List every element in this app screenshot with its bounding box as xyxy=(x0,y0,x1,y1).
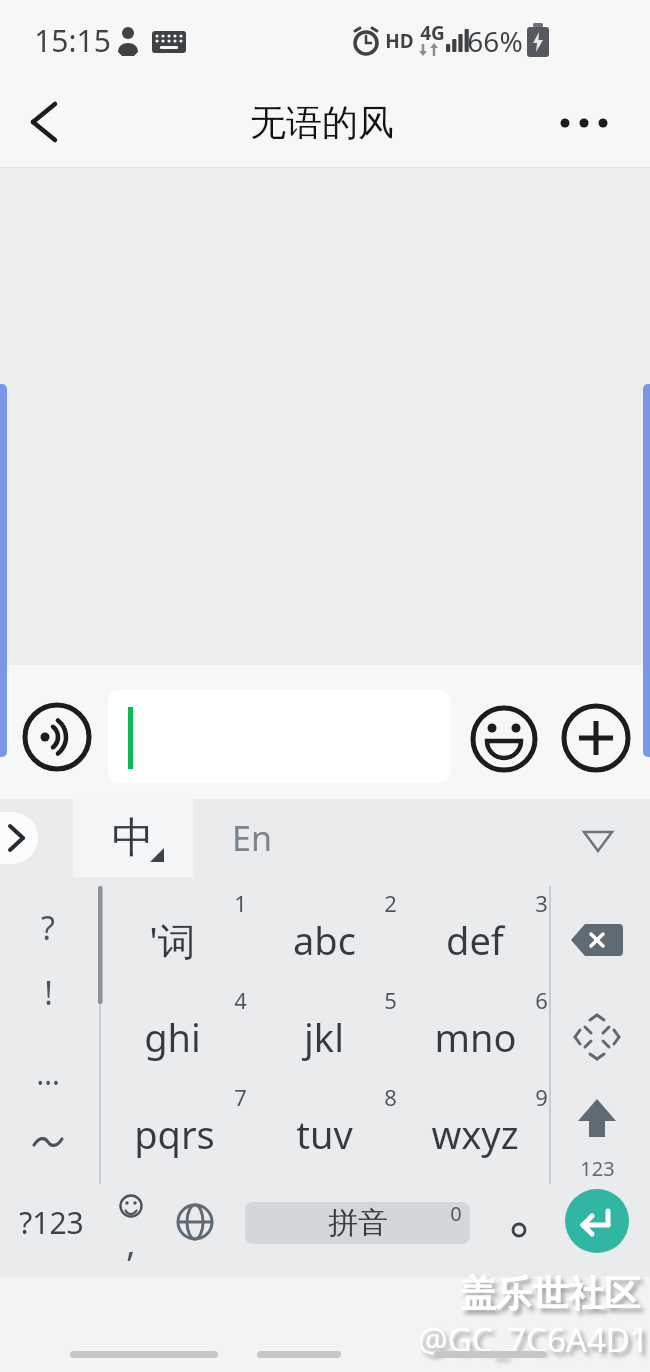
button[interactable] xyxy=(491,1198,547,1258)
staticText: ! xyxy=(44,971,53,1015)
button[interactable] xyxy=(565,1189,629,1253)
button[interactable]: 中 xyxy=(73,799,193,877)
staticText: 4 xyxy=(234,985,247,1015)
staticText: … xyxy=(36,1053,60,1094)
staticText: 15:15 xyxy=(34,20,111,61)
button[interactable] xyxy=(568,814,628,864)
staticText: 0 xyxy=(450,1200,462,1227)
button[interactable] xyxy=(19,699,95,775)
button[interactable]: ! xyxy=(0,958,168,1028)
button[interactable]: def xyxy=(355,905,595,975)
staticText: 4G xyxy=(420,20,445,46)
button[interactable] xyxy=(557,1002,637,1072)
button[interactable]: ?123 xyxy=(0,1187,171,1257)
staticText: 7 xyxy=(234,1082,247,1112)
staticText: 2 xyxy=(384,888,397,918)
button[interactable]: 拼音 xyxy=(245,1202,470,1244)
button[interactable]: wxyz xyxy=(355,1099,595,1169)
button[interactable] xyxy=(18,1118,78,1168)
staticText: 无语的风 xyxy=(250,100,394,145)
staticText: 6 xyxy=(535,985,548,1015)
button[interactable]: ghi xyxy=(52,1002,292,1072)
button[interactable] xyxy=(14,87,74,157)
staticText: wxyz xyxy=(431,1108,519,1160)
staticText: tuv xyxy=(296,1108,353,1160)
staticText: abc xyxy=(293,914,356,966)
staticText: def xyxy=(446,914,504,966)
staticText: HD xyxy=(385,28,414,54)
button[interactable]: mno xyxy=(355,1002,595,1072)
button[interactable] xyxy=(544,93,624,153)
staticText: pqrs xyxy=(134,1108,215,1160)
staticText: ?123 xyxy=(19,1202,84,1243)
button[interactable]: En xyxy=(132,803,372,873)
button[interactable]: tuv xyxy=(204,1099,444,1169)
button[interactable] xyxy=(163,1190,227,1254)
staticText: 盖乐世社区 xyxy=(460,1271,640,1316)
staticText: En xyxy=(232,815,272,861)
staticText: 1 xyxy=(234,888,247,918)
button[interactable] xyxy=(108,690,450,783)
button[interactable] xyxy=(0,812,38,864)
staticText: 123 xyxy=(580,1155,615,1182)
button[interactable]: '词 xyxy=(52,905,292,975)
button[interactable]: ? xyxy=(0,893,168,963)
staticText: 中 xyxy=(112,812,154,865)
button[interactable]: … xyxy=(0,1038,168,1108)
staticText: ghi xyxy=(144,1011,201,1063)
staticText: ? xyxy=(41,906,55,950)
button[interactable] xyxy=(557,905,637,975)
staticText: 3 xyxy=(535,888,548,918)
staticText: mno xyxy=(434,1011,517,1063)
staticText: '词 xyxy=(149,914,196,966)
button[interactable]: abc xyxy=(204,905,444,975)
staticText: 9 xyxy=(535,1082,548,1112)
staticText: @GC_7C6A4D1 xyxy=(418,1317,649,1362)
staticText: 拼音 xyxy=(328,1204,388,1242)
button[interactable]: pqrs xyxy=(54,1099,294,1169)
staticText: 5 xyxy=(384,985,397,1015)
staticText: , xyxy=(126,1218,136,1267)
button[interactable]: jkl xyxy=(204,1002,444,1072)
button[interactable]: , xyxy=(99,1186,163,1258)
staticText: jkl xyxy=(304,1011,344,1063)
staticText: 66% xyxy=(467,22,523,60)
button[interactable] xyxy=(559,701,633,775)
staticText: 8 xyxy=(384,1082,397,1112)
button[interactable] xyxy=(468,703,540,775)
button[interactable] xyxy=(557,1091,637,1171)
